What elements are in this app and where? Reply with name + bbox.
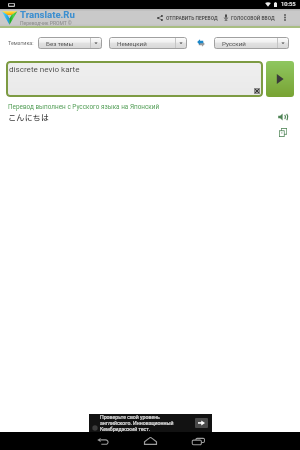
button[interactable]: Speak [276, 110, 290, 124]
button[interactable]: ГОЛОСОВОЙ ВВОД [222, 11, 277, 24]
staticText: Перевод выполнен с Русского языка на Япо… [8, 103, 160, 111]
staticText: 10:55 [281, 1, 296, 8]
button[interactable]: Open ad [195, 418, 208, 428]
button[interactable]: Проверьте свой уровень [89, 414, 212, 432]
button[interactable]: Русский [214, 37, 289, 49]
button[interactable]: Home [135, 432, 165, 450]
staticText: английского. Инновационный [100, 420, 174, 426]
button[interactable]: Clear text [254, 88, 260, 94]
button[interactable]: Copy [276, 125, 290, 139]
button[interactable]: More options [277, 9, 293, 26]
button[interactable]: Немецкий [109, 37, 187, 49]
staticText: Тематика: [8, 40, 34, 46]
staticText: Русский [222, 40, 246, 47]
button[interactable]: Back [88, 432, 118, 450]
button[interactable]: discrete nevio karte [6, 61, 263, 97]
button[interactable]: Recent apps [183, 432, 213, 450]
button[interactable]: Без темы [38, 37, 102, 49]
button[interactable]: ОТПРАВИТЬ ПЕРЕВОД [155, 12, 220, 24]
staticText: ОТПРАВИТЬ ПЕРЕВОД [166, 15, 218, 21]
staticText: Без темы [46, 40, 74, 47]
staticText: Проверьте свой уровень [100, 414, 160, 420]
button[interactable]: Swap languages [195, 37, 207, 49]
staticText: Немецкий [117, 40, 147, 47]
button[interactable]: Translate [266, 61, 294, 97]
staticText: ГОЛОСОВОЙ ВВОД [231, 15, 275, 21]
staticText: discrete nevio karte [9, 64, 80, 73]
staticText: Переводчик PROMT © [20, 20, 72, 26]
staticText: こんにちは [8, 112, 49, 124]
staticText: Кембриджский тест. [100, 426, 151, 432]
staticText: Translate.Ru [20, 9, 75, 20]
